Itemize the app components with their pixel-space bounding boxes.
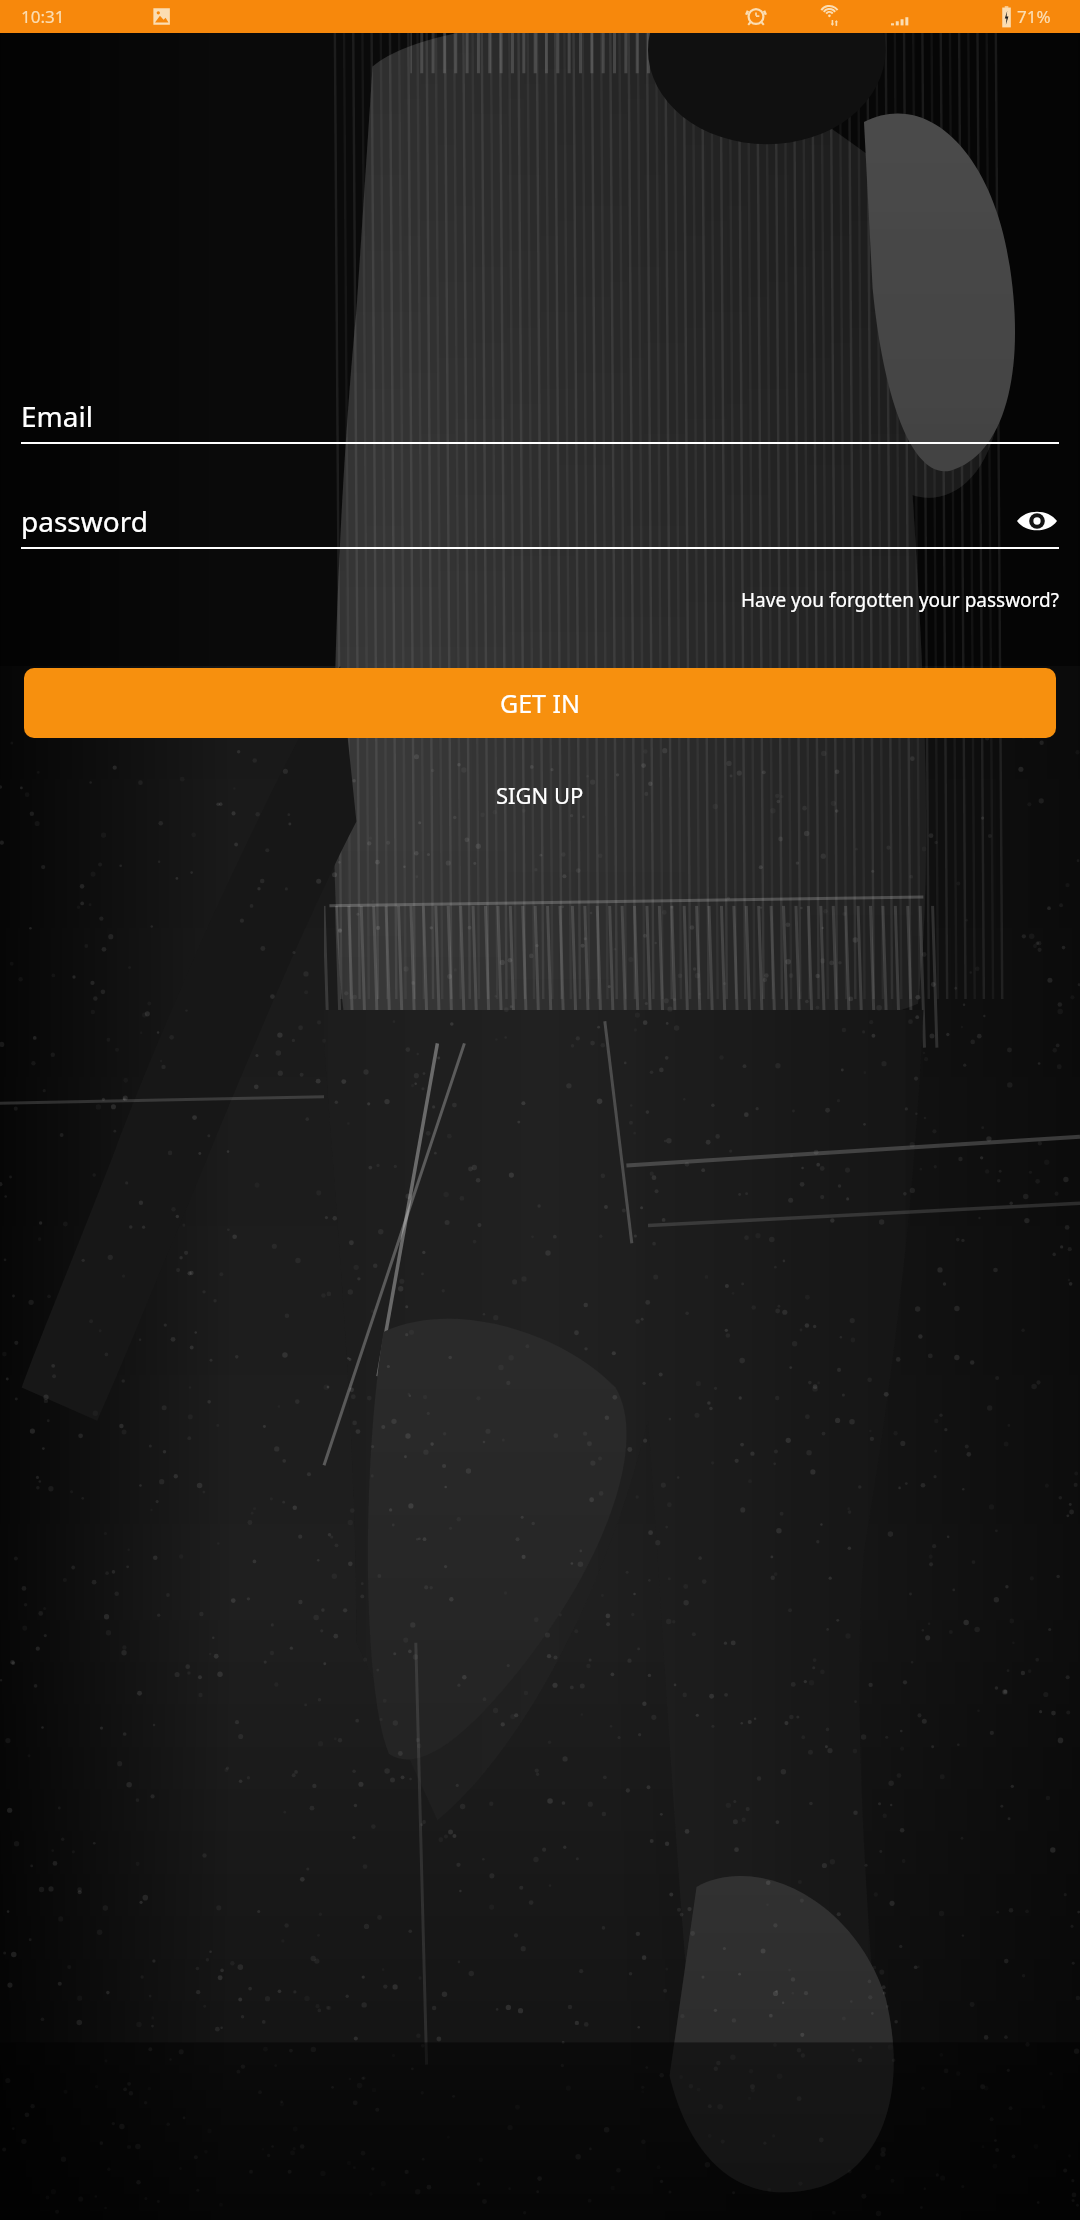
button[interactable]: Show password <box>1015 499 1059 543</box>
button[interactable]: Email <box>21 397 1059 444</box>
button[interactable]: SIGN UP <box>472 772 608 818</box>
button[interactable]: password <box>21 499 1059 543</box>
staticText: 71% <box>1017 5 1051 28</box>
staticText: GET IN <box>500 686 580 720</box>
staticText: 10:31 <box>21 5 65 28</box>
button[interactable]: GET IN <box>24 668 1056 738</box>
staticText: password <box>21 502 1015 540</box>
staticText: Email <box>21 397 93 435</box>
button[interactable]: Have you forgotten your password? <box>741 581 1059 619</box>
